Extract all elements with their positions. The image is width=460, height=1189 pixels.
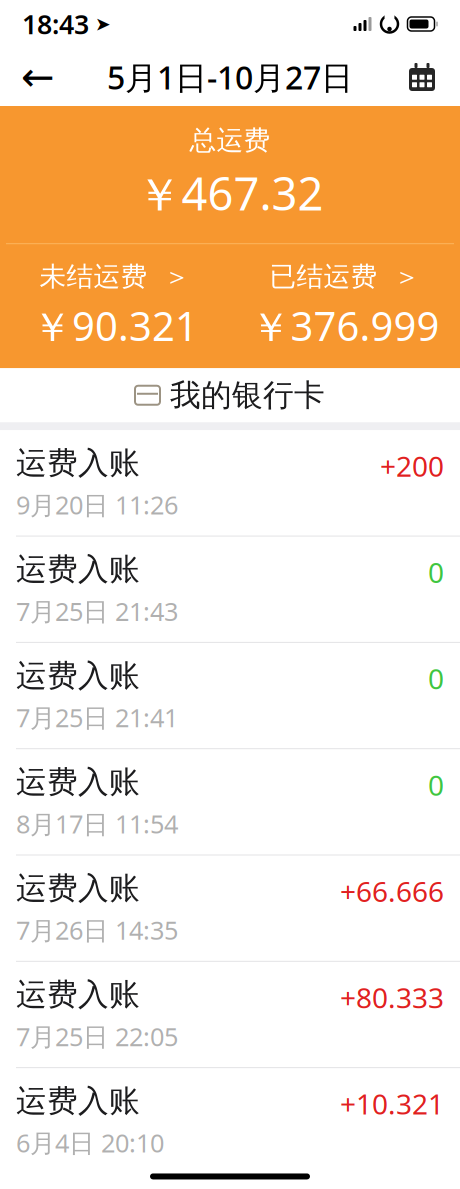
staticText: 6月4日 20:10 — [16, 1126, 164, 1159]
button[interactable]: 运费入账 — [0, 642, 460, 748]
button[interactable]: 运费入账 — [0, 536, 460, 642]
button[interactable]: 我的银行卡 — [0, 368, 460, 422]
staticText: ￥90.321 — [32, 299, 198, 352]
button[interactable]: 运费入账 — [0, 854, 460, 961]
button[interactable]: 选择日期 — [398, 53, 446, 101]
staticText: 9月20日 11:26 — [16, 488, 178, 521]
staticText: +200 — [380, 447, 444, 484]
staticText: 运费入账 — [16, 763, 140, 801]
button[interactable]: 运费入账 — [0, 961, 460, 1067]
button[interactable]: 运费入账 — [0, 1067, 460, 1173]
staticText: ￥467.32 — [136, 163, 323, 223]
staticText: 运费入账 — [16, 976, 140, 1013]
staticText: 5月1日-10月27日 — [107, 56, 353, 98]
staticText: 已结运费 ＞ — [269, 260, 420, 293]
button[interactable]: 运费入账 — [0, 430, 460, 536]
staticText: 7月26日 14:35 — [16, 913, 178, 947]
staticText: 0 — [428, 554, 444, 591]
staticText: 未结运费 ＞ — [39, 260, 190, 293]
staticText: 总运费 — [189, 124, 270, 157]
staticText: 8月17日 11:54 — [16, 807, 178, 840]
staticText: 运费入账 — [16, 869, 140, 907]
staticText: ← — [21, 54, 55, 100]
staticText: 运费入账 — [16, 444, 140, 482]
staticText: 0 — [428, 766, 444, 803]
staticText: ➤ — [89, 13, 111, 35]
staticText: 运费入账 — [16, 657, 140, 695]
staticText: ￥376.999 — [250, 299, 439, 352]
staticText: +10.321 — [340, 1085, 444, 1122]
staticText: 7月25日 21:41 — [16, 701, 178, 734]
staticText: 运费入账 — [16, 551, 140, 588]
button[interactable]: 已结运费 ＞ — [230, 244, 460, 368]
staticText: 7月25日 21:43 — [16, 594, 178, 628]
staticText: +80.333 — [340, 979, 444, 1016]
staticText: 0 — [428, 660, 444, 697]
staticText: 我的银行卡 — [170, 376, 325, 414]
button[interactable]: 未结运费 ＞ — [0, 244, 230, 368]
button[interactable]: 返回 — [14, 53, 62, 101]
staticText: +66.666 — [340, 872, 444, 910]
staticText: 7月25日 22:05 — [16, 1019, 178, 1053]
staticText: 18:43 — [22, 6, 89, 42]
button[interactable]: 运费入账 — [0, 748, 460, 854]
staticText: 运费入账 — [16, 1082, 140, 1120]
